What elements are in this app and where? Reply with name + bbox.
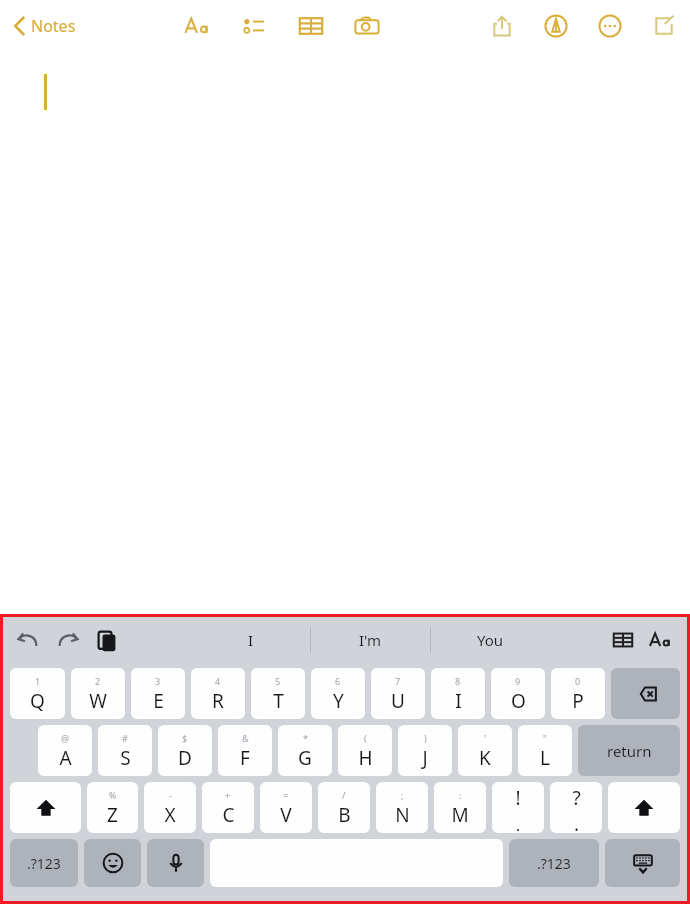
- staticText: 4: [215, 675, 221, 687]
- staticText: :: [459, 789, 462, 801]
- staticText: ": [543, 732, 547, 744]
- staticText: ): [424, 732, 427, 744]
- button[interactable]: /: [318, 782, 370, 833]
- button[interactable]: %: [87, 782, 138, 833]
- button[interactable]: :: [434, 782, 486, 833]
- button[interactable]: Shift right: [608, 782, 680, 833]
- staticText: 0: [575, 675, 581, 687]
- button[interactable]: #: [98, 725, 152, 776]
- button[interactable]: ': [458, 725, 512, 776]
- button[interactable]: Camera: [350, 9, 384, 43]
- staticText: 5: [275, 675, 281, 687]
- staticText: X: [164, 802, 176, 828]
- staticText: V: [280, 802, 292, 828]
- staticText: G: [298, 745, 312, 771]
- button[interactable]: 7: [371, 668, 425, 719]
- button[interactable]: Undo: [13, 625, 43, 655]
- button[interactable]: Shift: [10, 782, 81, 833]
- button[interactable]: ): [398, 725, 452, 776]
- button[interactable]: Dictation: [147, 839, 204, 887]
- staticText: J: [422, 745, 428, 771]
- button[interactable]: 0: [551, 668, 605, 719]
- button[interactable]: More: [594, 10, 626, 42]
- button[interactable]: @: [38, 725, 92, 776]
- button[interactable]: =: [260, 782, 312, 833]
- staticText: U: [391, 688, 405, 714]
- button[interactable]: .?123: [10, 839, 78, 887]
- button[interactable]: Hide keyboard: [605, 839, 680, 887]
- button[interactable]: 1: [10, 668, 65, 719]
- button[interactable]: Paste: [93, 626, 121, 654]
- button[interactable]: -: [144, 782, 196, 833]
- staticText: 1: [35, 675, 41, 687]
- staticText: 3: [155, 675, 161, 687]
- button[interactable]: Format text: [182, 9, 216, 43]
- staticText: 7: [395, 675, 401, 687]
- staticText: K: [479, 745, 491, 771]
- staticText: %: [109, 789, 117, 801]
- button[interactable]: 2: [71, 668, 125, 719]
- button[interactable]: $: [158, 725, 212, 776]
- staticText: N: [395, 802, 410, 828]
- button[interactable]: Markup: [540, 10, 572, 42]
- staticText: 2: [95, 675, 101, 687]
- button[interactable]: &: [218, 725, 272, 776]
- button[interactable]: Table: [294, 9, 328, 43]
- staticText: &: [242, 732, 249, 744]
- button[interactable]: 3: [131, 668, 185, 719]
- button[interactable]: Share: [486, 10, 518, 42]
- button[interactable]: Notes: [10, 9, 80, 43]
- button[interactable]: ": [518, 725, 572, 776]
- staticText: P: [572, 688, 584, 714]
- staticText: R: [212, 688, 224, 714]
- staticText: .?123: [537, 854, 571, 873]
- button[interactable]: 4: [191, 668, 245, 719]
- staticText: Notes: [31, 15, 76, 37]
- button[interactable]: 5: [251, 668, 305, 719]
- button[interactable]: Format: [647, 625, 677, 655]
- staticText: -: [169, 789, 172, 801]
- button[interactable]: 9: [491, 668, 545, 719]
- button[interactable]: *: [278, 725, 332, 776]
- staticText: /: [342, 789, 346, 801]
- button[interactable]: ? .: [550, 782, 602, 833]
- button[interactable]: +: [202, 782, 254, 833]
- staticText: ': [484, 732, 487, 744]
- button[interactable]: 8: [431, 668, 485, 719]
- button[interactable]: I'm: [311, 617, 430, 663]
- staticText: L: [540, 745, 550, 771]
- button[interactable]: 6: [311, 668, 365, 719]
- staticText: I: [248, 630, 254, 650]
- staticText: return: [607, 741, 652, 761]
- button[interactable]: Redo: [53, 625, 83, 655]
- staticText: *: [303, 732, 308, 744]
- button[interactable]: I: [191, 617, 310, 663]
- staticText: Y: [333, 688, 344, 714]
- button[interactable]: (: [338, 725, 392, 776]
- staticText: 6: [335, 675, 341, 687]
- button[interactable]: You: [431, 617, 550, 663]
- staticText: C: [222, 802, 235, 828]
- button[interactable]: ! ,: [492, 782, 544, 833]
- staticText: D: [178, 745, 192, 771]
- staticText: .?123: [27, 854, 61, 873]
- button[interactable]: Compose: [648, 10, 680, 42]
- staticText: B: [338, 802, 351, 828]
- button[interactable]: Table: [609, 626, 637, 654]
- staticText: +: [225, 789, 231, 801]
- staticText: T: [273, 688, 284, 714]
- button[interactable]: Emoji: [84, 839, 141, 887]
- staticText: =: [283, 789, 289, 801]
- button[interactable]: .?123: [509, 839, 599, 887]
- button[interactable]: Backspace: [611, 668, 680, 719]
- staticText: $: [182, 732, 188, 744]
- button[interactable]: Checklist: [238, 9, 272, 43]
- staticText: @: [61, 732, 70, 744]
- button[interactable]: ;: [376, 782, 428, 833]
- staticText: F: [240, 745, 250, 771]
- staticText: M: [451, 802, 469, 828]
- button[interactable]: return: [578, 725, 680, 776]
- staticText: ! ,: [515, 785, 521, 831]
- staticText: 8: [455, 675, 461, 687]
